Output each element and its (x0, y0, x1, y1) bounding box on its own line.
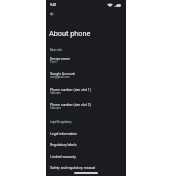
button[interactable]: Phone number (sim slot 1) (46, 85, 126, 101)
staticText: Unknown (50, 92, 61, 95)
staticText: Device name (50, 57, 70, 61)
staticText: Legal information (50, 132, 78, 136)
button[interactable]: Limited warranty (46, 151, 126, 163)
staticText: Phone number (sim slot 2) (50, 103, 92, 107)
staticText: Safety and regulatory manual (50, 166, 96, 170)
button[interactable]: Phone number (sim slot 2) (46, 100, 126, 116)
staticText: Basic info (50, 48, 62, 51)
staticText: Legal & regulatory (50, 120, 72, 123)
button[interactable]: Back (47, 9, 57, 19)
staticText: Unknown (50, 107, 61, 110)
staticText: Regulatory labels (50, 143, 77, 147)
button[interactable]: Legal information (46, 128, 126, 140)
staticText: Limited warranty (50, 155, 76, 159)
button[interactable]: Safety and regulatory manual (46, 162, 126, 174)
staticText: Google Account (50, 72, 75, 76)
button[interactable]: Regulatory labels (46, 139, 126, 151)
button[interactable]: Google Account (46, 69, 126, 85)
staticText: About phone (49, 29, 91, 38)
staticText: Pixel 7 (50, 61, 58, 64)
button[interactable]: Device name (46, 54, 126, 70)
staticText: 9:41 (50, 3, 57, 7)
staticText: Phone number (sim slot 1) (50, 88, 92, 92)
staticText: user@gmail.com (50, 76, 70, 79)
